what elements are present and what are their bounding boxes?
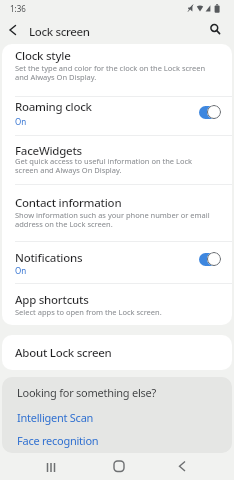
- staticText: Get quick access to useful information o…: [15, 156, 193, 175]
- button[interactable]: [41, 457, 61, 477]
- staticText: Intelligent Scan: [17, 410, 94, 425]
- staticText: Set the type and color for the clock on …: [15, 63, 206, 82]
- staticText: Select apps to open from the Lock screen…: [15, 307, 162, 317]
- button[interactable]: FaceWidgets: [2, 135, 232, 184]
- staticText: Show information such as your phone numb…: [15, 210, 210, 229]
- button[interactable]: Intelligent Scan: [2, 408, 232, 426]
- staticText: Contact information: [15, 195, 122, 211]
- button[interactable]: Notifications: [2, 241, 232, 283]
- button[interactable]: [4, 20, 24, 40]
- staticText: Roaming clock: [15, 99, 92, 115]
- staticText: Notifications: [15, 250, 83, 266]
- staticText: About Lock screen: [15, 345, 112, 361]
- button[interactable]: [205, 19, 227, 41]
- staticText: Lock screen: [29, 24, 90, 40]
- button[interactable]: Clock style: [2, 47, 232, 96]
- staticText: Face recognition: [17, 433, 99, 448]
- staticText: Looking for something else?: [17, 385, 157, 400]
- button[interactable]: Roaming clock: [2, 96, 232, 135]
- button[interactable]: [107, 456, 127, 476]
- staticText: On: [15, 265, 27, 276]
- button[interactable]: Face recognition: [2, 431, 232, 449]
- staticText: App shortcuts: [15, 292, 89, 308]
- staticText: Clock style: [15, 48, 71, 64]
- staticText: 1:36: [10, 3, 26, 14]
- button[interactable]: [172, 456, 192, 476]
- button[interactable]: App shortcuts: [2, 283, 232, 325]
- button[interactable]: About Lock screen: [2, 335, 232, 370]
- staticText: On: [15, 116, 27, 127]
- staticText: FaceWidgets: [15, 143, 82, 159]
- button[interactable]: Contact information: [2, 184, 232, 241]
